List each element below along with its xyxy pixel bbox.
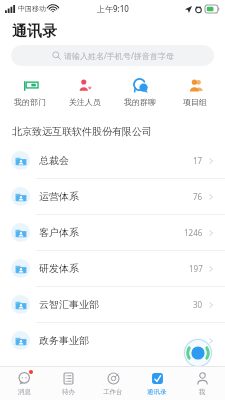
staticText: 76	[193, 191, 203, 202]
button[interactable]: 研发体系	[0, 251, 225, 286]
button[interactable]: 通讯录	[136, 371, 178, 396]
button[interactable]: 运营体系	[0, 179, 225, 214]
staticText: 总裁会	[39, 154, 69, 167]
staticText: 中国移动	[18, 4, 46, 13]
button[interactable]: 待办	[47, 371, 89, 396]
staticText: 消息	[18, 388, 31, 396]
staticText: 研发体系	[39, 262, 79, 275]
button[interactable]: 我的群聊	[115, 77, 165, 107]
staticText: 1246	[184, 227, 203, 238]
button[interactable]: 总裁会	[0, 143, 225, 178]
staticText: 我	[199, 388, 206, 396]
staticText: 项目组	[183, 97, 207, 107]
button[interactable]: 云智汇事业部	[0, 287, 225, 322]
button[interactable]: 客户体系	[0, 215, 225, 250]
staticText: 工作台	[103, 388, 123, 396]
button[interactable]: 关注人员	[60, 77, 110, 107]
button[interactable]: 我的部门	[5, 77, 55, 107]
staticText: 通讯录	[147, 388, 167, 396]
button[interactable]: 请输入姓名/手机号/拼音首字母	[11, 45, 214, 66]
staticText: 197	[189, 263, 203, 274]
staticText: 待办	[62, 388, 75, 396]
button[interactable]: 语音助手	[183, 338, 213, 368]
button[interactable]: 消息	[3, 371, 45, 396]
staticText: 我的群聊	[124, 97, 156, 107]
button[interactable]: 项目组	[170, 77, 220, 107]
staticText: 通讯录	[12, 22, 57, 41]
staticText: 运营体系	[39, 190, 79, 203]
staticText: 北京致远互联软件股份有限公司	[12, 125, 152, 138]
button[interactable]: 政务事业部	[0, 323, 225, 358]
staticText: 我的部门	[14, 97, 46, 107]
staticText: 上午9:10	[97, 3, 129, 14]
staticText: 客户体系	[39, 226, 79, 239]
button[interactable]: 工作台	[92, 371, 134, 396]
staticText: 关注人员	[69, 97, 101, 107]
staticText: 30	[193, 299, 203, 310]
button[interactable]: 我	[181, 371, 223, 396]
staticText: 政务事业部	[39, 334, 89, 347]
staticText: 请输入姓名/手机号/拼音首字母	[64, 50, 174, 61]
staticText: 17	[193, 155, 203, 166]
staticText: 云智汇事业部	[39, 298, 99, 311]
